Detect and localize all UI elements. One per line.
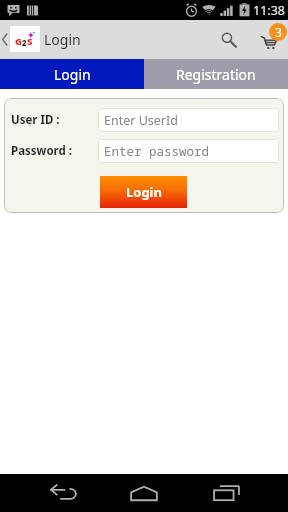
button[interactable]: G2S home	[10, 26, 40, 52]
button[interactable]: Registration	[144, 59, 288, 89]
staticText: 2	[22, 37, 27, 48]
staticText: Login	[126, 183, 162, 201]
staticText: S	[27, 35, 33, 48]
staticText: 3	[275, 24, 282, 40]
button[interactable]: Shopping cart	[250, 20, 288, 59]
staticText: Login	[44, 30, 81, 49]
button[interactable]: Search	[209, 20, 246, 59]
staticText: G	[15, 35, 22, 48]
staticText: 11:38	[253, 2, 285, 19]
button[interactable]: Recent apps	[202, 474, 250, 512]
staticText: Enter UserId	[104, 112, 178, 129]
button[interactable]: Login	[100, 176, 187, 208]
button[interactable]: Home	[120, 474, 168, 512]
staticText: Enter password	[104, 143, 210, 160]
button[interactable]: Back	[39, 474, 87, 512]
button[interactable]: Navigate up	[0, 20, 10, 59]
staticText: Registration	[176, 65, 256, 84]
staticText: Login	[54, 65, 91, 84]
staticText: Password :	[11, 143, 73, 159]
button[interactable]: Enter UserId	[98, 108, 279, 132]
button[interactable]: Enter password	[98, 139, 279, 163]
staticText: User ID :	[11, 112, 60, 128]
button[interactable]: Login	[0, 59, 144, 89]
